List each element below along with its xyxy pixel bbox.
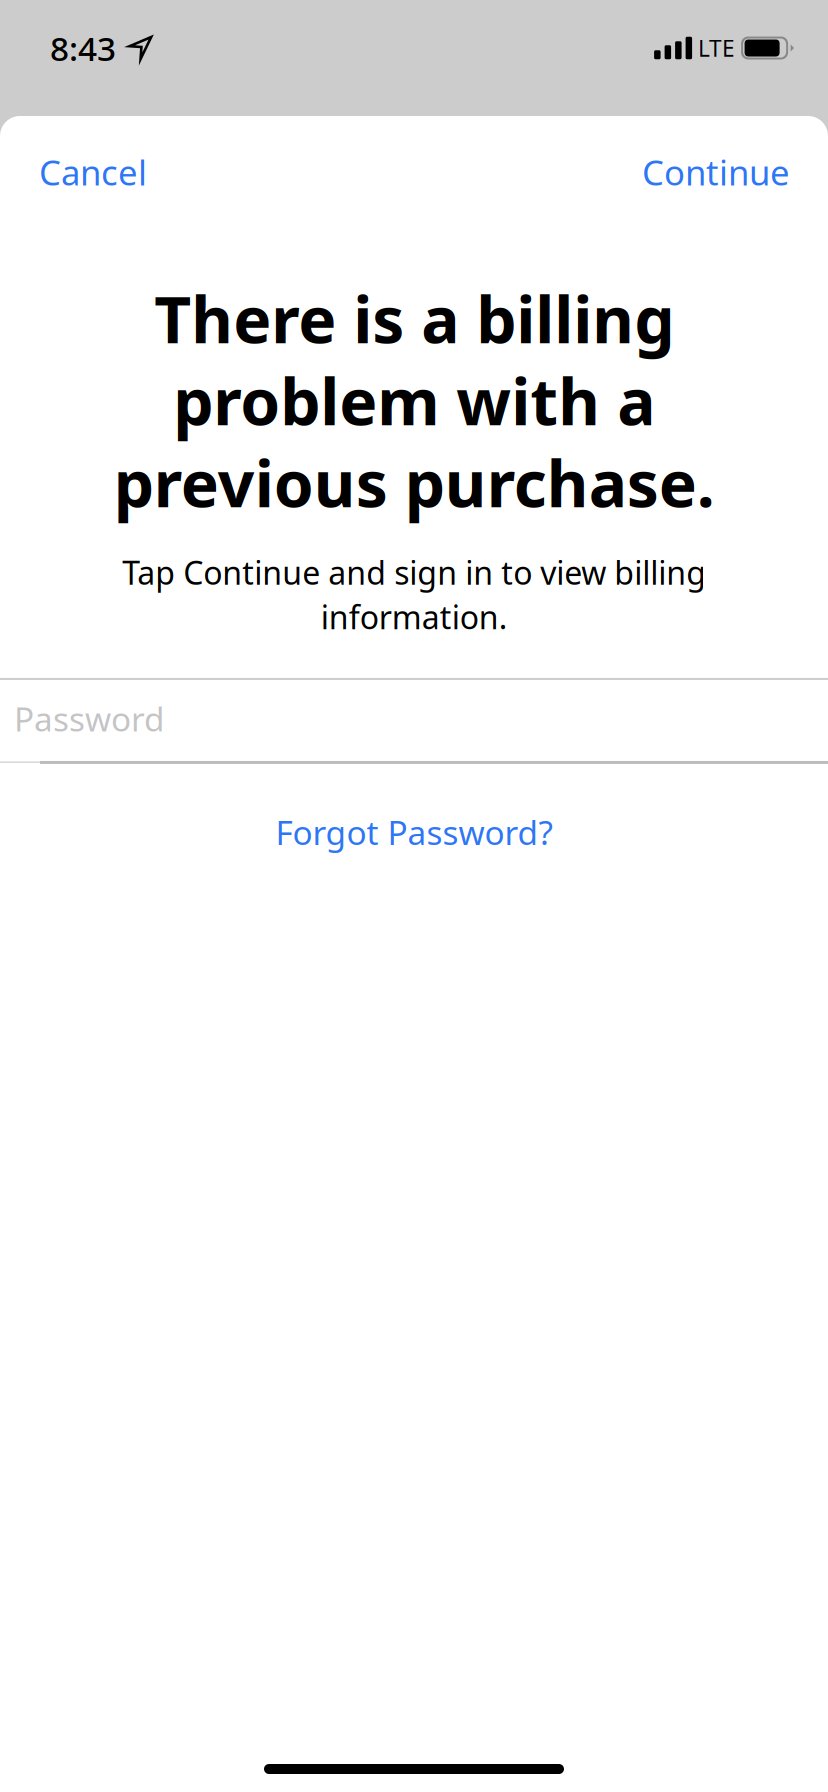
button[interactable]: Forgot Password? <box>0 790 828 874</box>
staticText: Cancel <box>39 149 147 195</box>
staticText: LTE <box>698 33 735 63</box>
staticText: Forgot Password? <box>275 810 552 854</box>
button[interactable]: Continue <box>604 116 828 228</box>
button[interactable]: Password <box>0 680 828 761</box>
staticText: Tap Continue and sign in to view billing… <box>122 551 706 638</box>
staticText: Password <box>14 696 165 741</box>
staticText: 8:43 <box>50 26 116 70</box>
staticText: There is a billing problem with a previo… <box>113 276 714 525</box>
staticText: Continue <box>642 149 790 195</box>
button[interactable]: Cancel <box>0 116 186 228</box>
